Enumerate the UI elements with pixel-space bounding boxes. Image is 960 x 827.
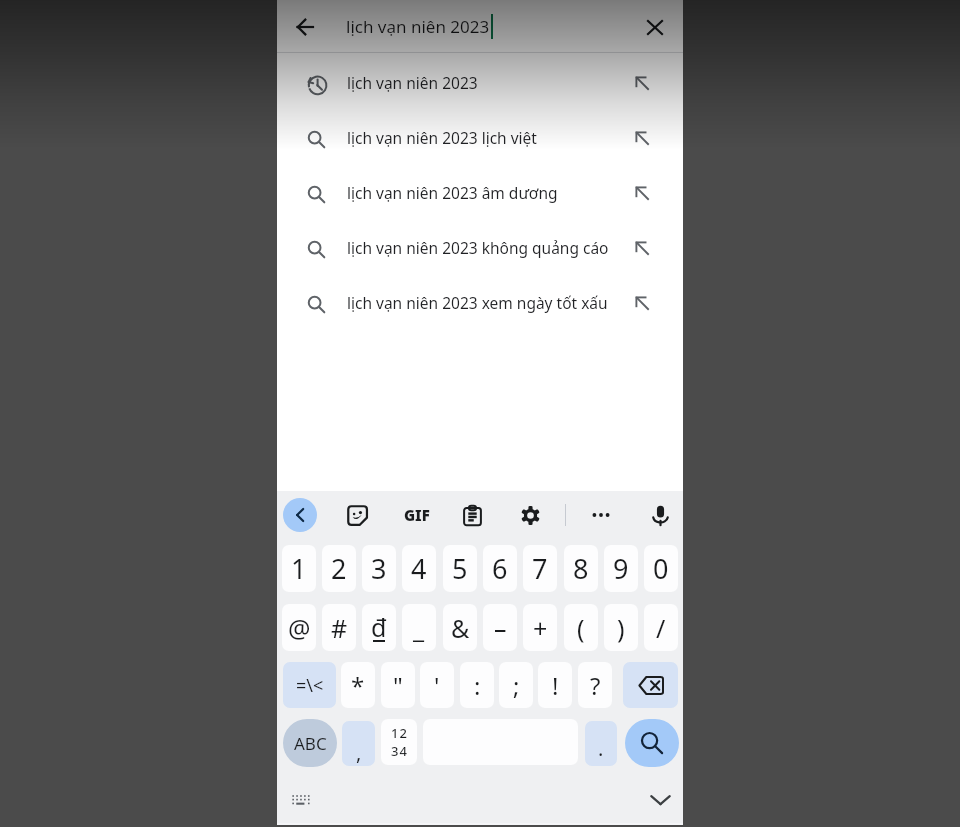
- staticText: 2: [331, 550, 347, 587]
- button[interactable]: Clear search: [632, 4, 678, 50]
- button[interactable]: Stickers: [340, 498, 374, 532]
- button[interactable]: ': [420, 662, 454, 708]
- button[interactable]: Back: [282, 4, 328, 50]
- button[interactable]: Keyboard layout: [286, 786, 314, 814]
- button[interactable]: Insert suggestion: [624, 55, 660, 110]
- staticText: +: [533, 611, 548, 645]
- button[interactable]: 4: [402, 545, 436, 592]
- staticText: 0: [653, 550, 669, 587]
- staticText: ABC: [294, 732, 327, 755]
- button[interactable]: #: [322, 604, 356, 651]
- button[interactable]: Search: [625, 719, 679, 767]
- staticText: GIF: [404, 505, 430, 525]
- staticText: –: [494, 611, 507, 645]
- staticText: #: [331, 611, 348, 645]
- staticText: _: [413, 611, 425, 645]
- staticText: /: [656, 611, 666, 645]
- staticText: ?: [590, 669, 601, 702]
- staticText: ": [393, 669, 403, 702]
- staticText: =\<: [296, 673, 324, 698]
- staticText: lịch vạn niên 2023: [346, 15, 490, 38]
- button[interactable]: Numbers 1234: [381, 719, 417, 765]
- button[interactable]: More options: [584, 498, 618, 532]
- button[interactable]: ,: [342, 721, 375, 766]
- button[interactable]: lịch vạn niên 2023 không quảng cáo: [277, 220, 683, 275]
- button[interactable]: Insert suggestion: [624, 220, 660, 275]
- button[interactable]: 3: [362, 545, 396, 592]
- button[interactable]: ": [381, 662, 415, 708]
- button[interactable]: GIF: [400, 498, 434, 532]
- button[interactable]: (: [564, 604, 598, 651]
- button[interactable]: Insert suggestion: [624, 275, 660, 330]
- button[interactable]: ABC: [283, 719, 337, 767]
- staticText: 3: [371, 550, 387, 587]
- button[interactable]: lịch vạn niên 2023: [277, 55, 683, 110]
- staticText: 1: [291, 550, 307, 587]
- staticText: 6: [492, 550, 508, 587]
- button[interactable]: Insert suggestion: [624, 110, 660, 165]
- staticText: đ: [371, 610, 387, 644]
- button[interactable]: 9: [604, 545, 638, 592]
- staticText: *: [351, 669, 365, 702]
- button[interactable]: /: [644, 604, 678, 651]
- button[interactable]: ;: [499, 662, 533, 708]
- button[interactable]: lịch vạn niên 2023 lịch việt: [277, 110, 683, 165]
- button[interactable]: .: [585, 721, 617, 766]
- staticText: !: [552, 669, 559, 702]
- button[interactable]: :: [460, 662, 494, 708]
- button[interactable]: _: [402, 604, 436, 651]
- button[interactable]: &: [443, 604, 477, 651]
- staticText: lịch vạn niên 2023: [347, 72, 478, 93]
- button[interactable]: –: [483, 604, 517, 651]
- staticText: 8: [573, 550, 589, 587]
- button[interactable]: lịch vạn niên 2023 xem ngày tốt xấu: [277, 275, 683, 330]
- staticText: 9: [613, 550, 629, 587]
- button[interactable]: Back to keyboard: [283, 498, 317, 532]
- button[interactable]: 0: [644, 545, 678, 592]
- staticText: 5: [452, 550, 468, 587]
- button[interactable]: ): [604, 604, 638, 651]
- staticText: ): [617, 611, 625, 645]
- staticText: ;: [513, 669, 520, 702]
- staticText: 34: [391, 742, 408, 760]
- staticText: .: [598, 735, 604, 762]
- staticText: 7: [532, 550, 548, 587]
- button[interactable]: 2: [322, 545, 356, 592]
- button[interactable]: Backspace: [623, 662, 678, 708]
- staticText: @: [288, 611, 311, 645]
- staticText: &: [451, 611, 470, 645]
- staticText: ': [434, 669, 440, 702]
- staticText: lịch vạn niên 2023 xem ngày tốt xấu: [347, 292, 608, 313]
- button[interactable]: 6: [483, 545, 517, 592]
- button[interactable]: 7: [523, 545, 557, 592]
- staticText: ,: [356, 739, 362, 766]
- button[interactable]: @: [282, 604, 316, 651]
- button[interactable]: 8: [564, 545, 598, 592]
- button[interactable]: *: [341, 662, 375, 708]
- button[interactable]: Hide keyboard: [644, 784, 676, 816]
- button[interactable]: Settings: [513, 498, 547, 532]
- button[interactable]: 5: [443, 545, 477, 592]
- staticText: lịch vạn niên 2023 không quảng cáo: [347, 237, 609, 258]
- button[interactable]: Clipboard: [455, 498, 489, 532]
- button[interactable]: +: [523, 604, 557, 651]
- button[interactable]: ?: [578, 662, 612, 708]
- staticText: (: [577, 611, 585, 645]
- button[interactable]: Insert suggestion: [624, 165, 660, 220]
- button[interactable]: =\<: [283, 662, 336, 708]
- staticText: 4: [411, 550, 427, 587]
- button[interactable]: 1: [282, 545, 316, 592]
- staticText: 12: [391, 724, 408, 742]
- button[interactable]: Voice input: [643, 498, 677, 532]
- staticText: lịch vạn niên 2023 lịch việt: [347, 127, 537, 148]
- button[interactable]: !: [538, 662, 572, 708]
- staticText: lịch vạn niên 2023 âm dương: [347, 182, 558, 203]
- staticText: :: [474, 669, 481, 702]
- button[interactable]: lịch vạn niên 2023 âm dương: [277, 165, 683, 220]
- button[interactable]: đ key: [362, 604, 396, 651]
